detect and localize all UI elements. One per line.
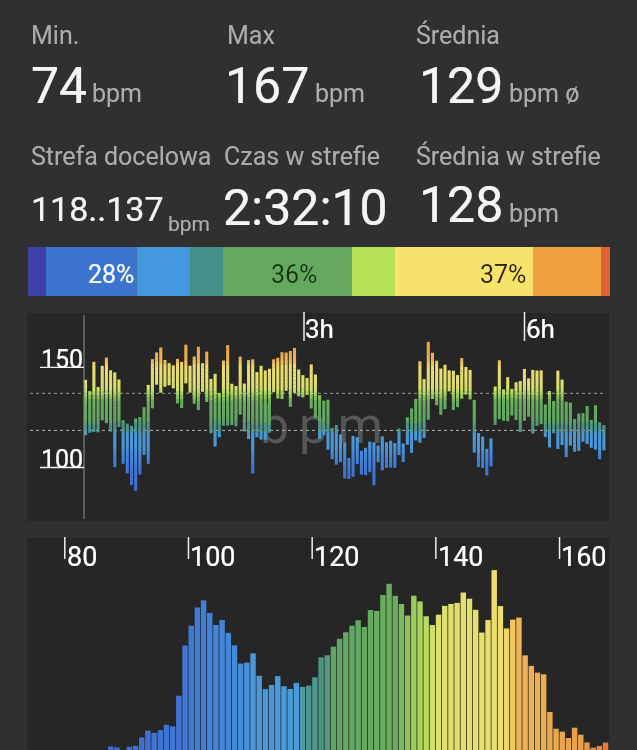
staticText: Średnia w strefie (416, 142, 601, 171)
staticText: 140 (438, 541, 484, 573)
staticText: 2:32:10 (223, 179, 388, 238)
staticText: bpm (509, 199, 559, 228)
staticText: 74 (31, 57, 88, 116)
staticText: Średnia (416, 21, 500, 50)
staticText: 100 (190, 541, 236, 573)
staticText: 28% (88, 260, 135, 289)
button[interactable]: 37% (480, 260, 527, 289)
staticText: 160 (561, 541, 607, 573)
staticText: bpm (168, 212, 210, 237)
staticText: Czas w strefie (224, 142, 381, 171)
staticText: 120 (314, 541, 360, 573)
staticText: bpm (260, 395, 393, 456)
staticText: 3h (305, 314, 334, 344)
staticText: 36% (271, 260, 318, 289)
button[interactable]: 36% (271, 260, 318, 289)
staticText: 37% (480, 260, 527, 289)
staticText: bpm ø (509, 79, 580, 108)
staticText: 80 (67, 541, 98, 573)
staticText: 100 (41, 445, 84, 474)
staticText: Strefa docelowa (31, 142, 212, 171)
staticText: 167 (225, 57, 310, 116)
staticText: Min. (31, 21, 80, 50)
staticText: 150 (41, 345, 84, 374)
button[interactable]: 28% (88, 260, 135, 289)
staticText: 128 (419, 176, 504, 235)
staticText: 129 (419, 57, 504, 116)
staticText: 118..137 (31, 189, 164, 229)
staticText: Max (227, 21, 275, 50)
staticText: bpm (92, 79, 142, 108)
staticText: 6h (526, 314, 555, 344)
staticText: bpm (315, 79, 365, 108)
